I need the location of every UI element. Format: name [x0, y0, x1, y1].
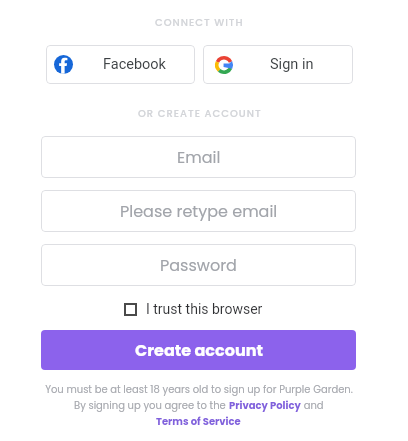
staticText: Privacy Policy	[229, 398, 301, 412]
staticText: Sign in	[270, 56, 314, 73]
staticText: By signing up you agree to the	[74, 398, 229, 412]
staticText: and	[301, 398, 324, 412]
staticText: I trust this browser	[146, 301, 263, 317]
staticText: OR CREATE ACCOUNT	[138, 106, 262, 120]
button[interactable]: Please retype email	[41, 190, 356, 232]
button[interactable]: Password	[41, 244, 356, 286]
button[interactable]: Sign in	[203, 45, 353, 84]
button[interactable]: Email	[41, 136, 356, 178]
staticText: Email	[177, 146, 221, 168]
staticText: Terms of Service	[156, 414, 241, 428]
button[interactable]: I trust this browser	[124, 301, 263, 317]
staticText: You must be at least 18 years old to sig…	[45, 382, 353, 396]
button[interactable]: Terms of Service	[156, 414, 241, 428]
button[interactable]: Create account	[41, 330, 356, 370]
button[interactable]: Privacy Policy	[229, 398, 301, 412]
staticText: Please retype email	[120, 200, 278, 222]
staticText: Create account	[135, 339, 263, 361]
staticText: Password	[160, 254, 237, 276]
staticText: CONNECT WITH	[155, 15, 244, 29]
button[interactable]: Facebook	[46, 45, 195, 84]
staticText: Facebook	[103, 56, 166, 73]
